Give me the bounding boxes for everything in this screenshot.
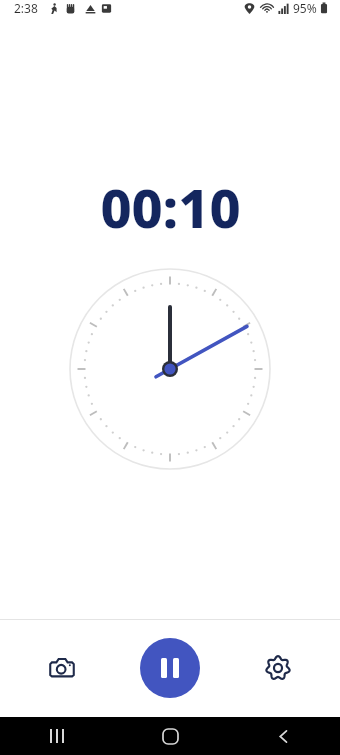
staticText: 2:38 — [14, 0, 38, 16]
button[interactable]: Home — [114, 717, 227, 755]
button[interactable]: Camera — [0, 619, 124, 717]
staticText: 95% — [293, 0, 317, 16]
button[interactable]: Pause — [140, 638, 200, 698]
button[interactable]: Back — [227, 717, 340, 755]
button[interactable]: Recents — [0, 717, 114, 755]
staticText: 00:10 — [100, 170, 241, 244]
button[interactable]: Settings — [216, 619, 340, 717]
